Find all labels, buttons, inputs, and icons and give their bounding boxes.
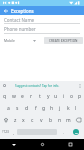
button[interactable]: d — [22, 102, 31, 114]
button[interactable]: q — [0, 90, 9, 102]
button[interactable]: p — [76, 90, 84, 102]
button[interactable]: c — [28, 114, 37, 126]
button[interactable]: r — [27, 90, 36, 102]
staticText: t — [39, 93, 41, 100]
staticText: i — [63, 93, 65, 100]
button[interactable]: n — [55, 114, 64, 126]
button[interactable]: y — [44, 90, 52, 102]
staticText: y — [47, 93, 50, 100]
staticText: c — [31, 117, 34, 124]
staticText: s — [16, 105, 19, 112]
button[interactable]: l — [72, 102, 80, 114]
button[interactable]: j — [56, 102, 64, 114]
staticText: Suggest contacts? Tap for info. — [15, 84, 60, 88]
staticText: z — [14, 117, 17, 124]
staticText: u — [54, 93, 58, 100]
button[interactable]: f — [31, 102, 40, 114]
staticText: , — [13, 130, 15, 135]
button[interactable]: k — [64, 102, 72, 114]
button[interactable]: w — [9, 90, 18, 102]
button[interactable]: Home — [28, 139, 56, 150]
button[interactable]: a — [4, 102, 13, 114]
button[interactable]: Backspace — [73, 114, 84, 126]
staticText: n — [58, 117, 62, 124]
button[interactable]: Go — [73, 129, 79, 135]
button[interactable]: h — [48, 102, 56, 114]
button[interactable]: x — [19, 114, 28, 126]
button[interactable]: CREATE EXCEPTION — [44, 37, 83, 44]
button[interactable]: o — [68, 90, 76, 102]
staticText: Contact Name — [4, 17, 35, 23]
button[interactable]: m — [64, 114, 73, 126]
button[interactable]: Back — [0, 6, 11, 15]
button[interactable]: b — [46, 114, 55, 126]
staticText: r — [30, 93, 33, 100]
staticText: . — [63, 130, 65, 135]
button[interactable]: Mobile — [4, 37, 36, 44]
staticText: o — [70, 93, 74, 100]
staticText: a — [7, 105, 10, 112]
staticText: j — [59, 105, 61, 112]
staticText: h — [50, 105, 54, 112]
staticText: Phone number — [4, 26, 36, 32]
staticText: ?123 — [2, 130, 9, 134]
button[interactable]: Hide keyboard — [0, 139, 28, 150]
staticText: b — [49, 117, 53, 124]
staticText: l — [75, 105, 77, 112]
staticText: d — [25, 105, 29, 112]
staticText: Exceptions — [11, 8, 34, 14]
staticText: k — [67, 105, 70, 112]
staticText: Mobile — [4, 38, 15, 43]
staticText: CREATE EXCEPTION — [49, 39, 78, 43]
staticText: v — [40, 117, 43, 124]
staticText: go — [75, 131, 78, 134]
staticText: g — [42, 105, 46, 112]
button[interactable]: e — [18, 90, 27, 102]
button[interactable]: z — [11, 114, 19, 126]
button[interactable]: t — [36, 90, 44, 102]
button[interactable]: i — [60, 90, 68, 102]
button[interactable]: g — [40, 102, 48, 114]
staticText: x — [22, 117, 25, 124]
button[interactable]: ?123 — [0, 126, 11, 138]
button[interactable]: u — [52, 90, 60, 102]
button[interactable]: Recents — [56, 139, 84, 150]
button[interactable]: s — [13, 102, 22, 114]
staticText: p — [78, 93, 82, 100]
staticText: q — [3, 93, 7, 100]
button[interactable]: v — [37, 114, 46, 126]
staticText: w — [12, 93, 16, 100]
staticText: m — [66, 117, 71, 124]
button[interactable]: Shift — [0, 114, 11, 126]
staticText: e — [21, 93, 24, 100]
staticText: f — [35, 105, 37, 112]
button[interactable]: Comma — [11, 126, 16, 138]
